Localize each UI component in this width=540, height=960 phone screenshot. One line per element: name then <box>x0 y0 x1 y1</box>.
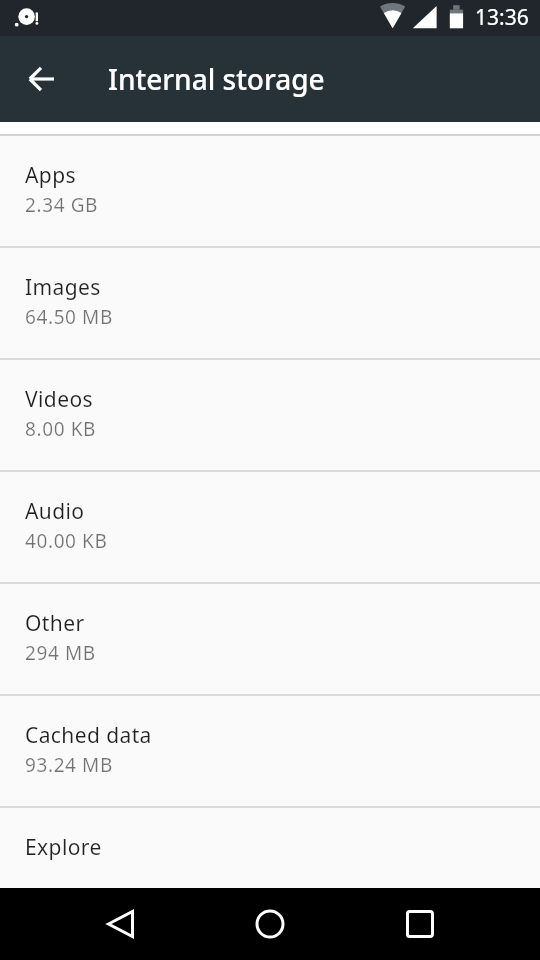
staticText: Explore <box>25 833 102 862</box>
button[interactable] <box>96 900 144 948</box>
staticText: Cached data <box>25 721 152 750</box>
button[interactable] <box>246 900 294 948</box>
staticText: 93.24 MB <box>25 752 113 778</box>
staticText: 40.00 KB <box>25 528 108 554</box>
button[interactable]: Apps <box>0 136 540 246</box>
staticText: Audio <box>25 497 85 526</box>
staticText: 64.50 MB <box>25 304 113 330</box>
button[interactable]: Images <box>0 248 540 358</box>
staticText: 294 MB <box>25 640 96 666</box>
staticText: Images <box>25 273 101 302</box>
staticText: 8.00 KB <box>25 416 96 442</box>
staticText: Other <box>25 609 85 638</box>
staticText: 13:36 <box>475 3 529 32</box>
staticText: Videos <box>25 385 93 414</box>
button[interactable] <box>18 55 66 103</box>
button[interactable]: Audio <box>0 472 540 582</box>
staticText: 2.34 GB <box>25 192 99 218</box>
staticText: Apps <box>25 161 76 190</box>
button[interactable]: Explore <box>0 808 540 918</box>
button[interactable] <box>396 900 444 948</box>
button[interactable]: Videos <box>0 360 540 470</box>
staticText: Internal storage <box>108 60 325 98</box>
button[interactable]: Cached data <box>0 696 540 806</box>
button[interactable]: Other <box>0 584 540 694</box>
